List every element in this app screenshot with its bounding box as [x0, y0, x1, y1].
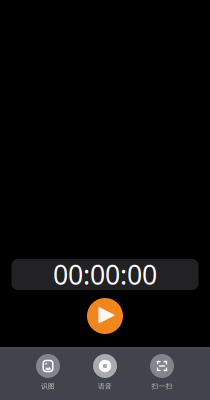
staticText: 00:00:00	[53, 257, 157, 292]
button[interactable]: 语音	[76, 347, 133, 400]
button[interactable]: 扫一扫	[133, 347, 190, 400]
staticText: 识图	[41, 382, 55, 390]
staticText: 语音	[98, 382, 112, 390]
staticText: 扫一扫	[151, 382, 172, 390]
button[interactable]: Start recording	[87, 298, 123, 334]
button[interactable]: 识图	[19, 347, 76, 400]
